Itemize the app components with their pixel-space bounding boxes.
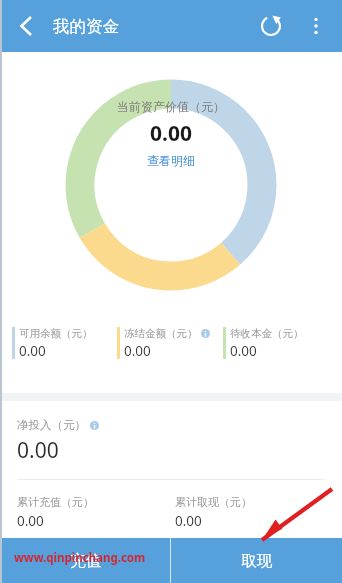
button[interactable]: 可用余额（元） [12, 327, 117, 360]
staticText: 我的资金 [53, 16, 119, 37]
button[interactable]: More options [298, 8, 334, 44]
staticText: 0.00 [175, 512, 202, 530]
button[interactable]: 查看明细 [147, 153, 195, 168]
button[interactable]: Refresh [252, 7, 290, 45]
staticText: 净投入（元） [17, 418, 86, 432]
staticText: 取现 [241, 551, 272, 571]
staticText: 累计取现（元） [175, 495, 252, 509]
staticText: 当前资产价值（元） [117, 99, 225, 114]
staticText: 0.00 [124, 342, 151, 360]
staticText: 0.00 [230, 342, 257, 360]
button[interactable]: Back [6, 6, 46, 46]
button[interactable]: 充值 [0, 538, 170, 583]
staticText: 0.00 [150, 119, 192, 148]
button[interactable]: 待收本金（元） [223, 327, 304, 360]
staticText: 冻结金额（元） [124, 327, 198, 340]
staticText: 充值 [70, 551, 101, 571]
staticText: 查看明细 [147, 153, 195, 168]
staticText: 0.00 [17, 512, 44, 530]
staticText: 可用余额（元） [19, 327, 93, 340]
staticText: www.qinpinchang.com [14, 550, 146, 566]
staticText: 累计充值（元） [17, 495, 94, 509]
staticText: 待收本金（元） [230, 327, 304, 340]
button[interactable]: 取现 [171, 538, 342, 583]
staticText: 0.00 [19, 342, 46, 360]
button[interactable]: 冻结金额（元） [117, 327, 223, 360]
staticText: 0.00 [17, 436, 59, 465]
